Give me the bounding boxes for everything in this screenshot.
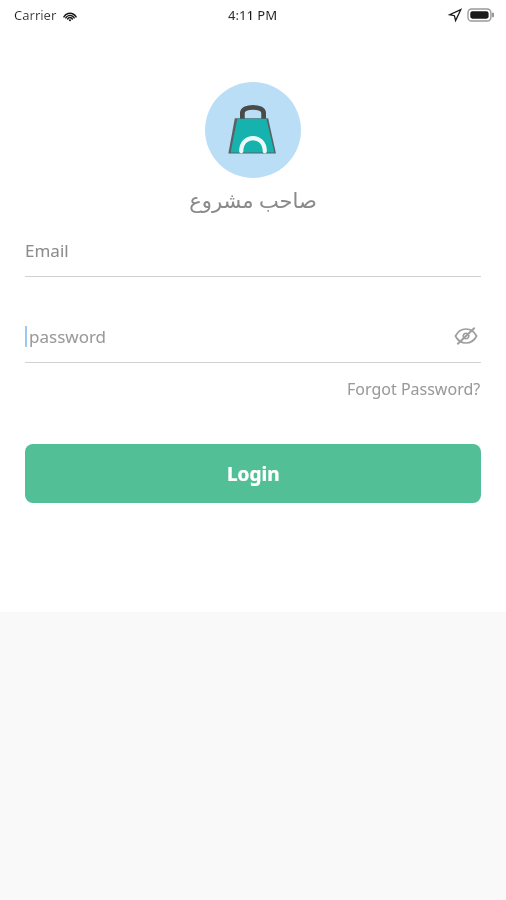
staticText: صاحب مشروع bbox=[0, 186, 506, 215]
staticText: Forgot Password? bbox=[347, 378, 481, 400]
button[interactable]: Forgot Password? bbox=[347, 378, 481, 400]
staticText: Carrier bbox=[14, 6, 57, 24]
staticText: Email bbox=[25, 239, 69, 262]
staticText: Login bbox=[227, 461, 280, 487]
button[interactable]: password bbox=[25, 321, 481, 351]
button[interactable]: Email bbox=[25, 239, 481, 277]
button[interactable]: Show password bbox=[451, 321, 481, 351]
staticText: 4:11 PM bbox=[228, 6, 278, 24]
staticText: password bbox=[29, 325, 107, 348]
button[interactable]: Login bbox=[25, 444, 481, 503]
